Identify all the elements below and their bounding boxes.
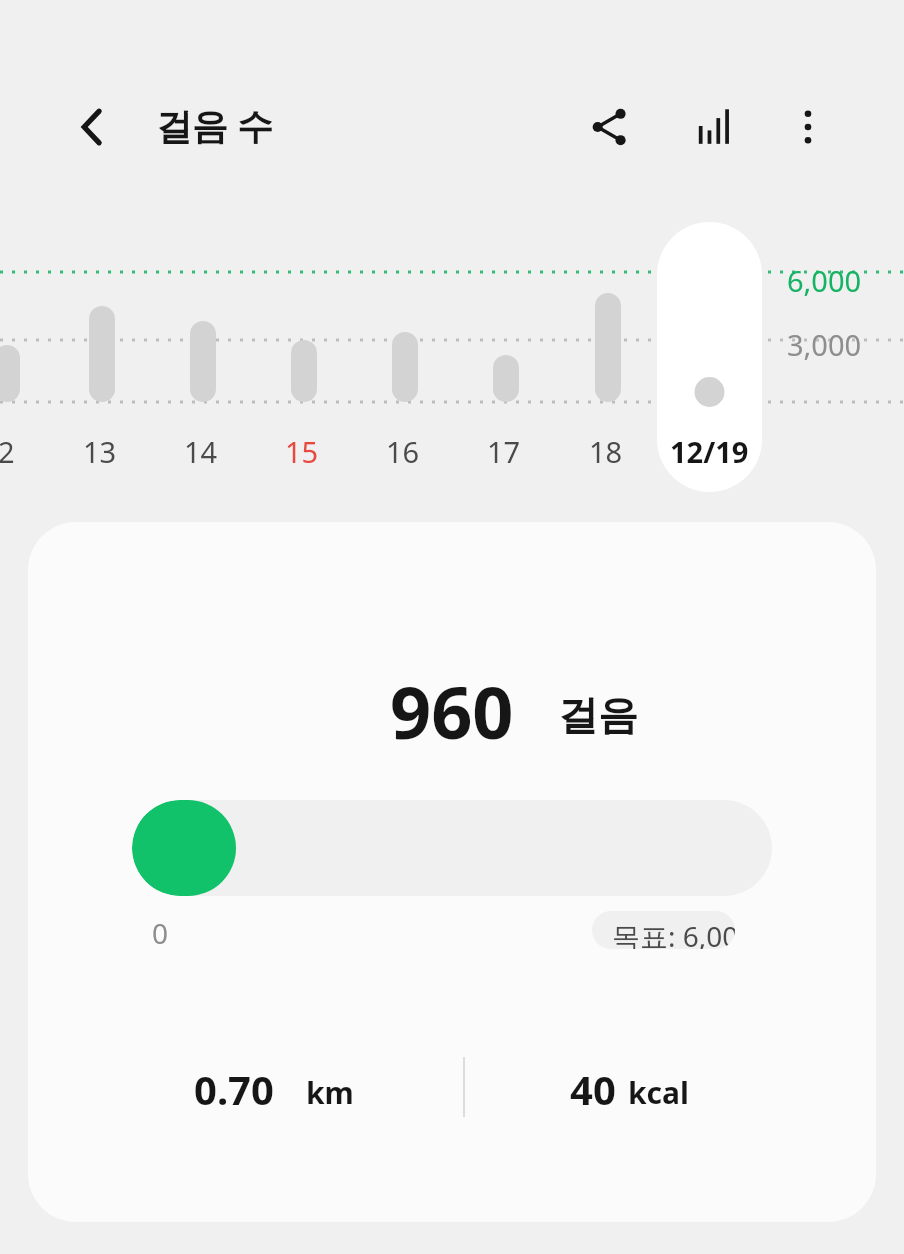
button[interactable]: 12/19	[657, 222, 762, 492]
staticText: 0.70	[194, 1062, 274, 1116]
staticText: 960	[390, 662, 514, 760]
button[interactable]: Charts	[678, 92, 748, 162]
staticText: 40	[570, 1062, 616, 1116]
staticText: 목표: 6,000	[612, 917, 735, 949]
staticText: 15	[285, 432, 319, 471]
button[interactable]: Share	[575, 92, 645, 162]
staticText: 12/19	[670, 432, 749, 471]
staticText: 걸음	[558, 690, 638, 740]
button[interactable]: 960	[28, 522, 876, 1222]
staticText: km	[306, 1072, 354, 1113]
staticText: 6,000	[787, 261, 862, 300]
staticText: 3,000	[787, 325, 862, 364]
staticText: 16	[386, 432, 420, 471]
staticText: 걸음 수	[156, 101, 274, 150]
staticText: 13	[83, 432, 117, 471]
staticText: kcal	[628, 1072, 689, 1113]
button[interactable]: More options	[773, 92, 843, 162]
staticText: 2	[0, 432, 15, 471]
staticText: 0	[152, 914, 169, 952]
button[interactable]: Back	[58, 92, 128, 162]
staticText: 14	[184, 432, 218, 471]
staticText: 18	[589, 432, 623, 471]
staticText: 17	[487, 432, 521, 471]
button[interactable]: 목표: 6,000	[592, 911, 735, 949]
